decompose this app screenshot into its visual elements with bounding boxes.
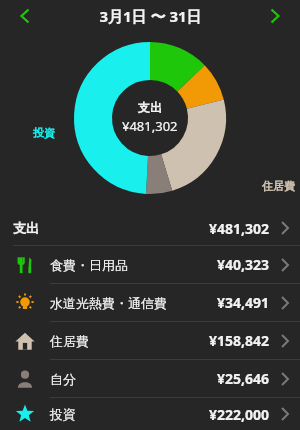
staticText: ¥34,491	[217, 293, 270, 312]
staticText: 支出	[13, 220, 39, 236]
button[interactable]: 水道光熱費・通信費	[0, 284, 300, 321]
staticText: 投資	[50, 406, 76, 422]
staticText: 住居費	[50, 333, 89, 349]
button[interactable]: 支出	[0, 211, 300, 245]
button[interactable]: 食費・日用品	[0, 246, 300, 283]
staticText: 支出	[138, 100, 162, 115]
staticText: ¥158,842	[209, 331, 270, 350]
staticText: 3月1日 〜 31日	[99, 6, 202, 26]
staticText: ¥40,323	[217, 255, 270, 274]
staticText: 食費・日用品	[50, 257, 128, 273]
staticText: 投資	[33, 126, 55, 140]
staticText: 水道光熱費・通信費	[50, 295, 167, 311]
staticText: ¥222,000	[209, 405, 270, 424]
button[interactable]: 自分	[0, 360, 300, 397]
staticText: ¥25,646	[217, 369, 270, 388]
button[interactable]: 投資	[0, 398, 300, 430]
button[interactable]: Previous month	[8, 0, 42, 32]
staticText: ¥481,302	[122, 117, 178, 135]
staticText: 自分	[50, 371, 76, 387]
button[interactable]: Next month	[258, 0, 292, 32]
staticText: 住居費	[262, 179, 295, 193]
staticText: ¥481,302	[209, 219, 270, 238]
button[interactable]: 住居費	[0, 322, 300, 359]
